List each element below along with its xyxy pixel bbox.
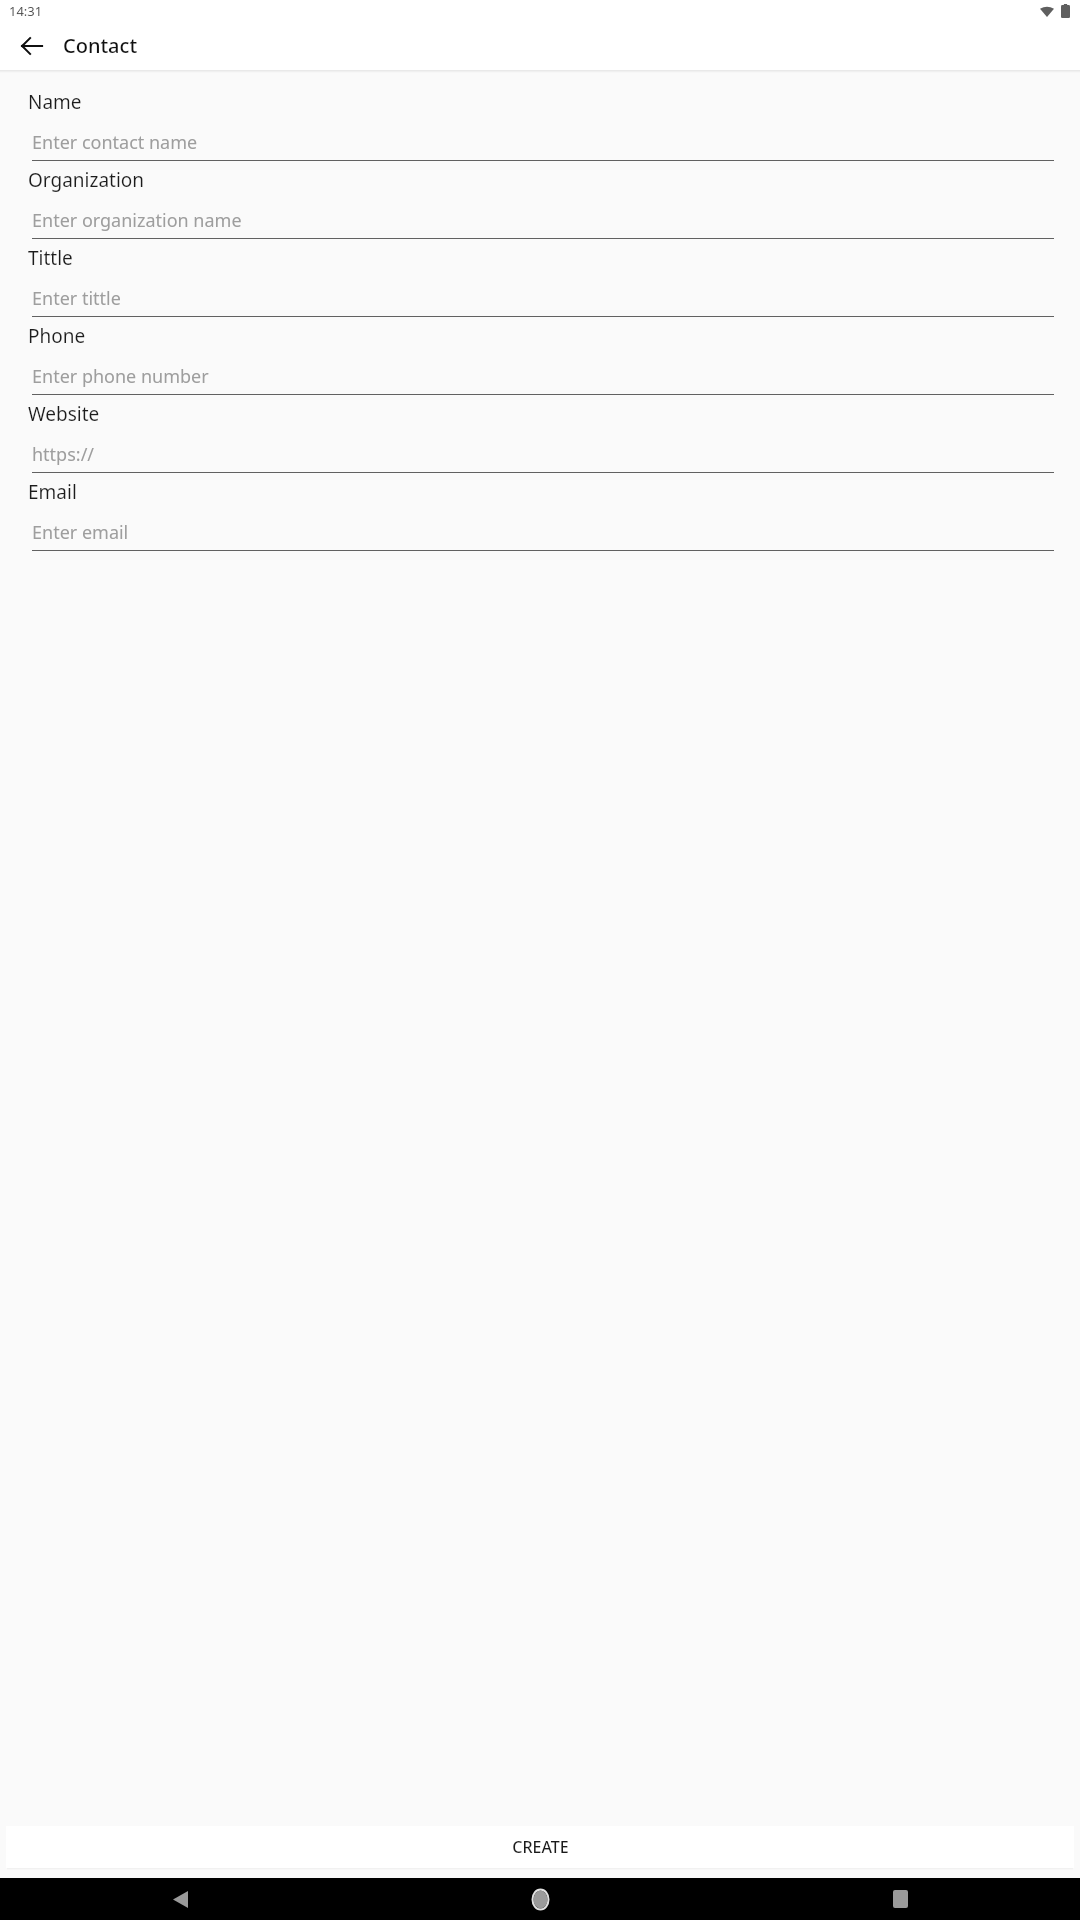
staticText: Enter tittle <box>32 286 121 311</box>
staticText: CREATE <box>512 1836 569 1858</box>
button[interactable]: Back <box>8 22 56 70</box>
button[interactable]: CREATE <box>6 1826 1074 1868</box>
staticText: Enter phone number <box>32 364 209 389</box>
staticText: Phone <box>28 323 86 349</box>
staticText: Tittle <box>28 245 73 271</box>
staticText: Enter contact name <box>32 130 198 155</box>
button[interactable]: Recent apps <box>720 1878 1080 1920</box>
staticText: Email <box>28 479 77 505</box>
button[interactable]: Email <box>0 473 1080 551</box>
button[interactable]: Website <box>0 395 1080 473</box>
button[interactable]: Home <box>360 1878 720 1920</box>
staticText: Enter organization name <box>32 208 242 233</box>
staticText: Contact <box>63 32 138 59</box>
staticText: Website <box>28 401 100 427</box>
button[interactable]: Tittle <box>0 239 1080 317</box>
staticText: Organization <box>28 167 145 193</box>
button[interactable]: Organization <box>0 161 1080 239</box>
button[interactable]: Back <box>0 1878 360 1920</box>
button[interactable]: Name <box>0 83 1080 161</box>
staticText: Enter email <box>32 520 129 545</box>
staticText: Name <box>28 89 82 115</box>
staticText: 14:31 <box>9 2 43 20</box>
button[interactable]: Phone <box>0 317 1080 395</box>
staticText: https:// <box>32 442 95 467</box>
